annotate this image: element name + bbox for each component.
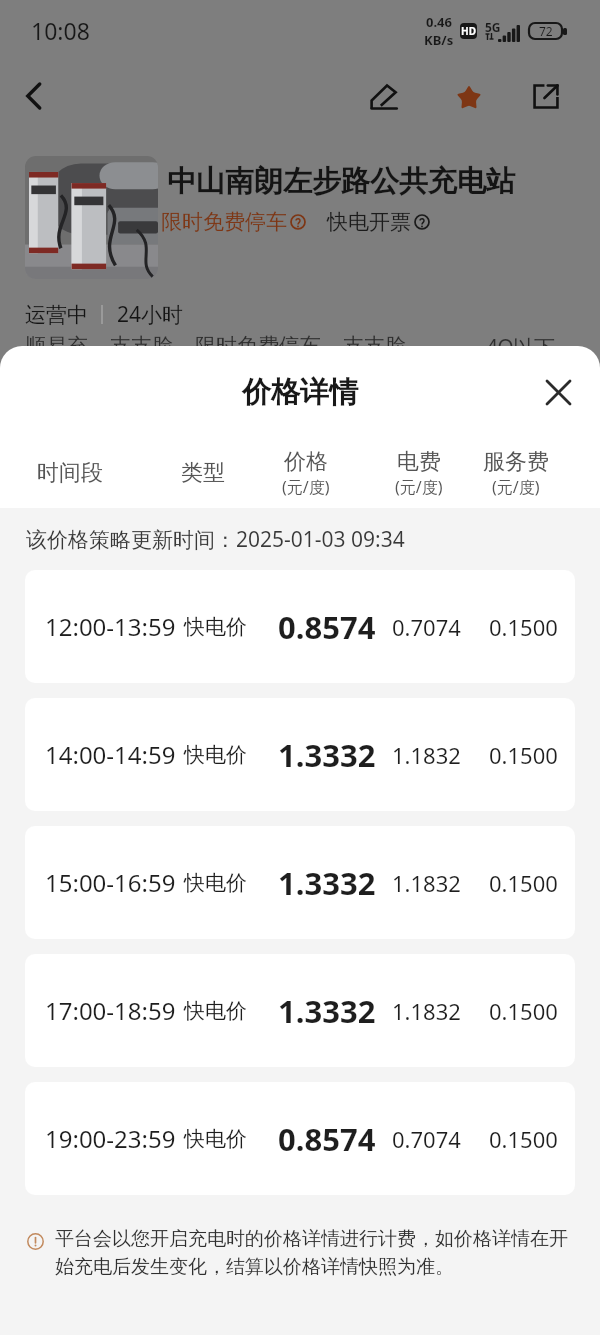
staticText: KB/s	[424, 31, 454, 49]
staticText: 限时免费停车	[195, 333, 321, 359]
staticText: (元/度)	[282, 476, 330, 498]
button[interactable]: 12:00-13:59	[25, 570, 575, 683]
staticText: 1.1832	[392, 868, 461, 898]
staticText: 快电开票	[327, 209, 411, 235]
button[interactable]: 19:00-23:59	[25, 1082, 575, 1195]
staticText: 快电价	[184, 1126, 247, 1152]
staticText: 0.46	[426, 13, 452, 31]
staticText: 快电价	[184, 742, 247, 768]
staticText: 运营中	[25, 302, 88, 328]
staticText: 0.1500	[489, 868, 558, 898]
button[interactable]: Close	[546, 380, 571, 405]
staticText: 0.1500	[489, 1124, 558, 1154]
staticText: 10:08	[31, 15, 90, 46]
staticText: 快电价	[184, 998, 247, 1024]
staticText: 19:00-23:59	[45, 1122, 176, 1155]
button[interactable]: 17:00-18:59	[25, 954, 575, 1067]
staticText: 平台会以您开启充电时的价格详情进行计费，如价格详情在开始充电后发生变化，结算以价…	[55, 1227, 584, 1279]
button[interactable]: 14:00-14:59	[25, 698, 575, 811]
button[interactable]: Share	[533, 84, 559, 109]
staticText: 快电价	[184, 870, 247, 896]
staticText: 1.3332	[278, 862, 376, 904]
button[interactable]: Back	[21, 82, 47, 110]
staticText: 时间段	[37, 459, 103, 487]
staticText: 1.1832	[392, 996, 461, 1026]
staticText: 服务费	[483, 448, 549, 476]
staticText: 价格详情	[242, 374, 358, 411]
staticText: 5G	[485, 19, 501, 35]
staticText: 15:00-16:59	[45, 866, 176, 899]
staticText: 支支脸	[343, 333, 406, 359]
staticText: 0.8574	[278, 606, 376, 648]
staticText: (元/度)	[395, 476, 443, 498]
button[interactable]: Favorite	[456, 84, 482, 110]
staticText: 14:00-14:59	[45, 738, 176, 771]
staticText: (元/度)	[492, 476, 540, 498]
staticText: 0.1500	[489, 612, 558, 642]
staticText: 1.1832	[392, 740, 461, 770]
staticText: 1.3332	[278, 734, 376, 776]
staticText: 0.7074	[392, 612, 461, 642]
button[interactable]: 15:00-16:59	[25, 826, 575, 939]
staticText: 17:00-18:59	[45, 994, 176, 1027]
staticText: 电费	[397, 448, 441, 476]
staticText: 该价格策略更新时间：2025-01-03 09:34	[26, 525, 405, 554]
staticText: 类型	[181, 459, 225, 487]
staticText: HD	[461, 24, 476, 38]
staticText: 12:00-13:59	[45, 610, 176, 643]
staticText: 中山南朗左步路公共充电站	[167, 163, 515, 200]
staticText: 快电价	[184, 614, 247, 640]
staticText: 4Ω以下	[486, 333, 556, 362]
staticText: 0.7074	[392, 1124, 461, 1154]
staticText: 1.3332	[278, 990, 376, 1032]
staticText: 24小时	[117, 300, 184, 329]
staticText: 0.8574	[278, 1118, 376, 1160]
staticText: 价格	[284, 448, 328, 476]
staticText: 72	[539, 23, 553, 39]
staticText: 0.1500	[489, 996, 558, 1026]
staticText: 支支脸	[110, 333, 173, 359]
staticText: 顺易充	[25, 333, 88, 359]
staticText: 限时免费停车	[161, 209, 287, 235]
staticText: 0.1500	[489, 740, 558, 770]
button[interactable]: Edit	[370, 84, 397, 109]
